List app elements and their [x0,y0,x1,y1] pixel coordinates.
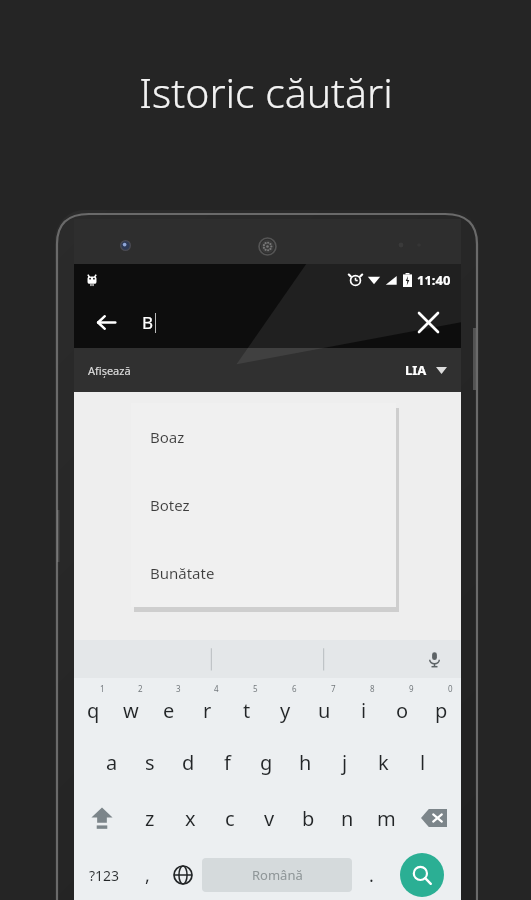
button[interactable]: Boaz [131,403,396,471]
staticText: w [123,697,139,724]
staticText: Botez [150,495,190,515]
button[interactable]: a [93,734,131,790]
staticText: 0 [448,683,453,694]
staticText: 5 [253,683,258,694]
button[interactable]: 8 [344,678,383,734]
staticText: z [145,805,155,832]
button[interactable]: c [210,790,250,846]
staticText: v [264,805,275,832]
staticText: l [420,749,426,776]
staticText: r [203,697,212,724]
button[interactable]: j [325,734,364,790]
staticText: 6 [292,683,297,694]
staticText: ?123 [89,866,120,885]
staticText: n [341,805,354,832]
button[interactable]: Shift [74,790,130,846]
button[interactable]: 6 [266,678,305,734]
staticText: f [224,749,231,776]
staticText: c [225,805,235,832]
button[interactable]: Bunătate [131,539,396,607]
button[interactable]: Clear search [407,301,449,343]
staticText: e [163,697,175,724]
staticText: d [182,749,195,776]
button[interactable]: 9 [383,678,422,734]
staticText: 7 [331,683,336,694]
staticText: u [318,697,331,724]
button[interactable]: d [169,734,208,790]
button[interactable]: 1 [74,678,112,734]
staticText: Bunătate [150,563,215,583]
staticText: LIA [405,361,427,379]
staticText: q [87,697,100,724]
staticText: 4 [214,683,219,694]
button[interactable]: Botez [131,471,396,539]
staticText: x [185,805,196,832]
button[interactable]: Română [202,858,352,892]
button[interactable]: g [247,734,286,790]
button[interactable]: 0 [422,678,461,734]
button[interactable]: k [364,734,403,790]
staticText: a [106,749,118,776]
staticText: b [302,805,315,832]
staticText: Română [252,866,303,884]
button[interactable]: s [131,734,169,790]
button[interactable]: b [289,790,328,846]
button[interactable]: z [130,790,170,846]
button[interactable]: Change language [164,846,202,900]
staticText: j [342,749,348,776]
staticText: 3 [176,683,181,694]
staticText: 8 [370,683,375,694]
staticText: 9 [409,683,414,694]
staticText: p [435,697,448,724]
staticText: . [369,863,374,888]
staticText: Afișează [88,363,131,378]
button[interactable]: x [170,790,210,846]
staticText: B [142,311,154,334]
staticText: , [145,863,150,888]
button[interactable]: 3 [150,678,188,734]
staticText: m [377,805,396,832]
button[interactable]: 7 [305,678,344,734]
button[interactable]: f [208,734,247,790]
staticText: k [378,749,389,776]
button[interactable]: n [328,790,367,846]
staticText: 1 [100,683,105,694]
staticText: t [243,697,251,724]
staticText: h [299,749,312,776]
staticText: g [260,749,273,776]
button[interactable]: v [250,790,289,846]
staticText: Istoric căutări [139,64,393,120]
button[interactable]: Back [86,302,126,342]
button[interactable]: m [367,790,406,846]
staticText: o [396,697,409,724]
staticText: 2 [138,683,143,694]
button[interactable]: h [286,734,325,790]
button[interactable]: Backspace [406,790,461,846]
button[interactable]: LIA [405,361,447,379]
button[interactable]: 5 [227,678,266,734]
staticText: i [361,697,367,724]
button[interactable]: , [131,846,164,900]
button[interactable]: 4 [188,678,227,734]
staticText: 11:40 [417,271,451,289]
staticText: y [280,697,291,724]
staticText: s [145,749,155,776]
button[interactable]: ?123 [78,846,131,900]
button[interactable]: Search [390,846,453,900]
staticText: Boaz [150,427,185,447]
button[interactable]: . [352,846,390,900]
button[interactable]: Voice input [421,646,447,672]
button[interactable]: l [403,734,442,790]
button[interactable]: 2 [112,678,150,734]
